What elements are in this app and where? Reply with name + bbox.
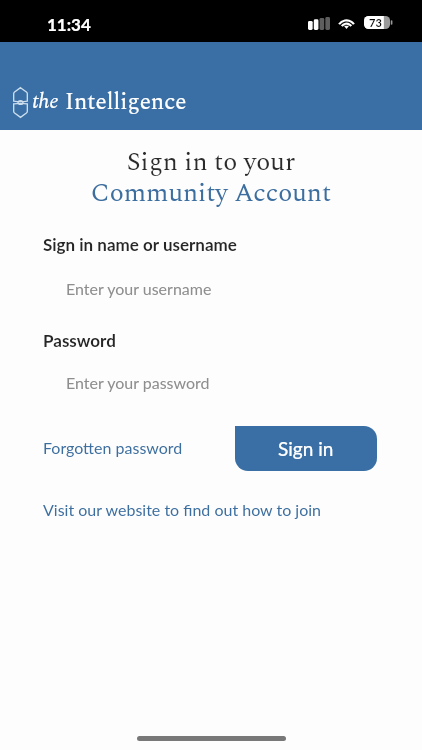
- staticText: 11:34: [47, 14, 91, 34]
- staticText: Enter your password: [66, 373, 210, 392]
- staticText: Intelligence: [65, 85, 187, 120]
- staticText: Sign in: [278, 437, 334, 460]
- staticText: Sign in to your: [0, 142, 422, 182]
- staticText: the: [32, 86, 59, 118]
- button[interactable]: Forgotten password: [43, 438, 183, 457]
- button[interactable]: Visit our website to find out how to joi…: [43, 500, 321, 519]
- button[interactable]: Sign in: [235, 426, 377, 471]
- staticText: Sign in name or username: [43, 234, 237, 254]
- staticText: Enter your username: [66, 279, 212, 298]
- staticText: 73: [369, 16, 382, 29]
- staticText: Community Account: [0, 173, 422, 213]
- staticText: Password: [43, 330, 116, 350]
